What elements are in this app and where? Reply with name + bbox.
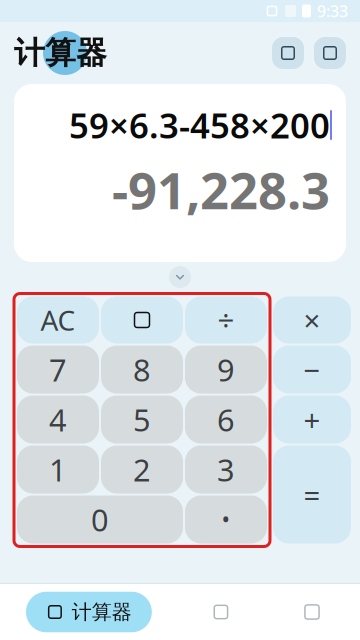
button[interactable]: 1 <box>17 445 99 493</box>
button[interactable]: 我的 <box>290 592 334 632</box>
button[interactable]: 7 <box>17 345 99 393</box>
staticText: 6 <box>217 399 235 440</box>
staticText: + <box>303 400 320 439</box>
staticText: -91,228.3 <box>112 156 330 223</box>
staticText: 3 <box>217 449 235 490</box>
staticText: AC <box>40 301 75 339</box>
staticText: 59×6.3-458×200 <box>69 102 330 148</box>
button[interactable]: = <box>273 445 351 543</box>
staticText: 1 <box>49 449 67 490</box>
staticText: 4 <box>49 399 67 440</box>
button[interactable]: 静音 <box>272 37 304 69</box>
button[interactable]: 退格 <box>101 296 183 343</box>
staticText: 8 <box>133 349 151 390</box>
staticText: 9 <box>217 349 235 390</box>
staticText: 0 <box>91 499 109 540</box>
staticText: 9:33 <box>317 0 348 22</box>
button[interactable]: 3 <box>185 445 267 493</box>
button[interactable]: 计算器 <box>26 592 152 632</box>
button[interactable]: 0 <box>17 495 183 543</box>
staticText: 7 <box>49 349 67 390</box>
staticText: ÷ <box>217 300 234 339</box>
button[interactable]: AC <box>17 296 99 343</box>
button[interactable]: 6 <box>185 395 267 443</box>
staticText: 5 <box>133 399 151 440</box>
button[interactable]: 展开历史记录 <box>169 266 191 288</box>
button[interactable]: 5 <box>101 395 183 443</box>
staticText: 计算器 <box>14 34 107 72</box>
button[interactable]: 8 <box>101 345 183 393</box>
button[interactable]: ÷ <box>185 296 267 343</box>
staticText: × <box>303 300 320 339</box>
button[interactable]: 9 <box>185 345 267 393</box>
staticText: 2 <box>133 449 151 490</box>
button[interactable]: + <box>273 395 351 443</box>
button[interactable]: − <box>273 345 351 393</box>
button[interactable]: × <box>273 296 351 343</box>
button[interactable]: 震动关闭 <box>314 37 346 69</box>
button[interactable]: 4 <box>17 395 99 443</box>
staticText: • <box>221 504 230 534</box>
staticText: − <box>303 350 320 389</box>
staticText: 计算器 <box>72 600 132 624</box>
button[interactable]: 更多工具 <box>199 592 243 632</box>
button[interactable]: • <box>185 495 267 543</box>
staticText: = <box>303 475 320 514</box>
button[interactable]: 2 <box>101 445 183 493</box>
